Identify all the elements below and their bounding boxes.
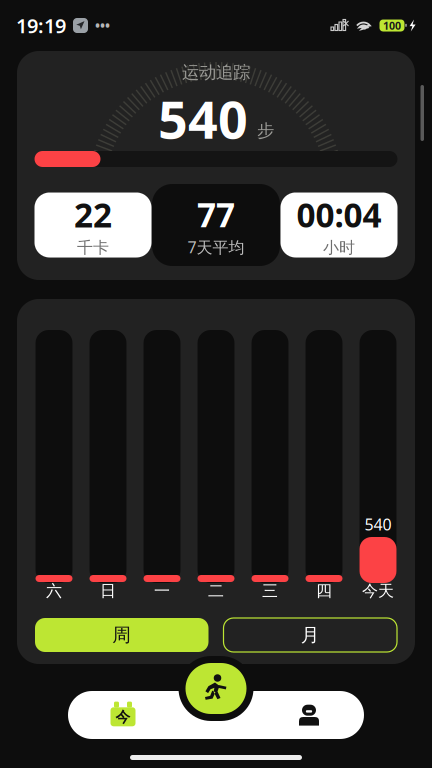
staticText: 一	[154, 581, 170, 601]
staticText: 19:19	[16, 12, 66, 39]
button[interactable]: 00:04	[280, 192, 397, 257]
button[interactable]: 周	[35, 618, 208, 652]
button[interactable]: 22	[34, 192, 151, 257]
staticText: 日	[100, 581, 116, 601]
staticText: 小时	[323, 238, 355, 257]
staticText: 周	[112, 623, 131, 646]
staticText: 六	[46, 581, 62, 601]
staticText: 运动追踪	[182, 62, 250, 83]
staticText: 22	[74, 192, 112, 237]
staticText: 月	[301, 623, 320, 646]
staticText: •••	[95, 17, 110, 34]
staticText: 7天平均	[187, 236, 244, 258]
button[interactable]: Profile	[254, 691, 364, 739]
staticText: 今天	[362, 581, 394, 601]
staticText: 二	[208, 581, 224, 601]
staticText: 步	[257, 120, 274, 141]
staticText: 今	[115, 708, 130, 726]
staticText: 540	[364, 514, 391, 535]
staticText: 三	[262, 581, 278, 601]
staticText: 100	[383, 18, 401, 33]
staticText: 四	[316, 581, 332, 601]
staticText: 千卡	[77, 238, 109, 257]
button[interactable]: Start workout	[178, 656, 253, 721]
button[interactable]: 月	[223, 618, 397, 652]
staticText: 540	[158, 84, 248, 153]
staticText: 00:04	[296, 192, 381, 237]
button[interactable]: Today	[68, 691, 178, 739]
button[interactable]: 77	[152, 184, 280, 266]
staticText: 77	[197, 192, 235, 236]
